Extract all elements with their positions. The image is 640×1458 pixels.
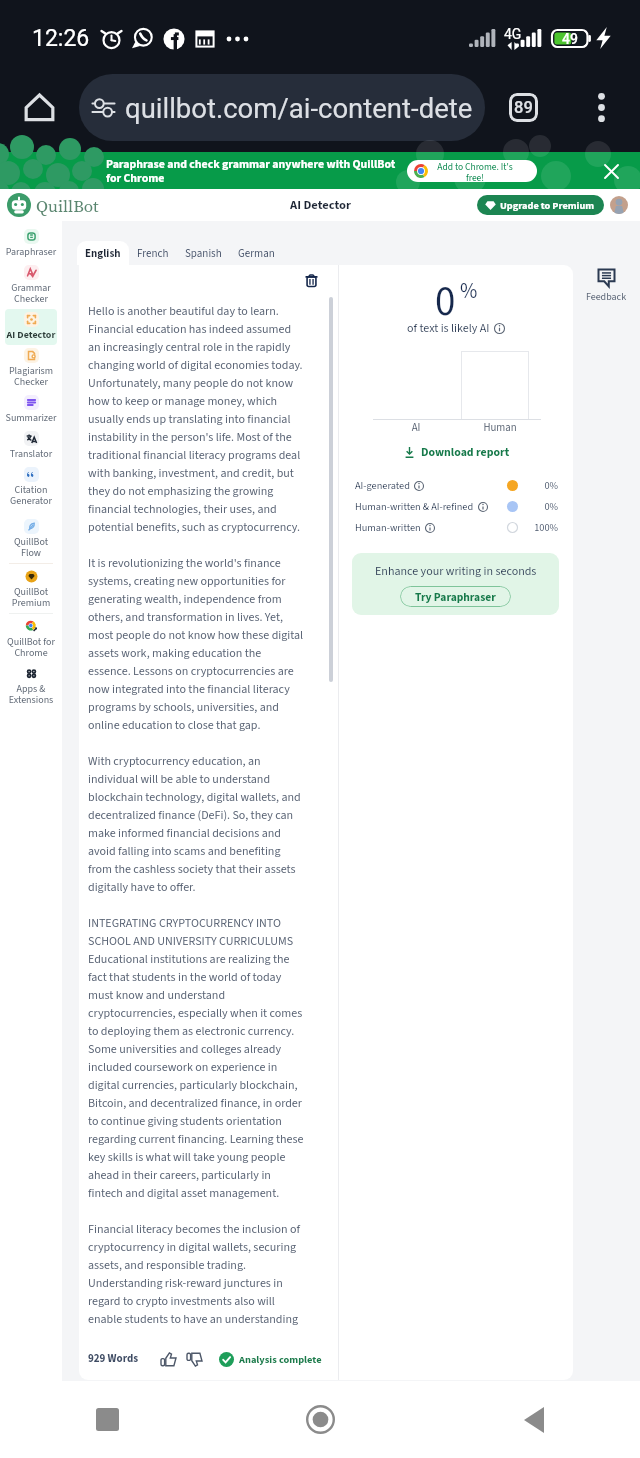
button[interactable]: Delete text <box>301 270 321 290</box>
staticText: Paraphraser <box>5 245 57 259</box>
button[interactable]: French <box>129 241 177 265</box>
staticText: Human-written & AI-refined <box>355 499 474 514</box>
button[interactable]: Account <box>610 196 628 214</box>
button[interactable]: AI Detector <box>5 309 57 345</box>
button[interactable]: Add to Chrome. It's free! <box>407 160 537 182</box>
staticText: Grammar Checker <box>5 281 57 306</box>
staticText: Upgrade to Premium <box>500 198 595 213</box>
staticText: % <box>460 276 478 306</box>
staticText: QuillBot Premium <box>5 585 57 610</box>
staticText: Enhance your writing in seconds <box>375 563 537 580</box>
staticText: AI Detector <box>290 196 351 214</box>
button[interactable]: Try Paraphraser <box>400 586 511 607</box>
staticText: Analysis complete <box>239 1352 322 1367</box>
button[interactable]: Plagiarism Checker <box>5 345 57 392</box>
button[interactable]: More options <box>579 85 623 129</box>
staticText: 929 Words <box>88 1351 139 1367</box>
button[interactable]: Back <box>427 1381 640 1458</box>
staticText: French <box>137 246 169 262</box>
staticText: Try Paraphraser <box>415 589 496 605</box>
staticText: of text is likely AI <box>407 320 490 337</box>
button[interactable]: quillbot.com/ai-content-dete <box>79 74 485 141</box>
staticText: 100% <box>526 520 558 535</box>
staticText: Translator <box>5 447 57 461</box>
button[interactable]: Apps & Extensions <box>5 663 57 710</box>
staticText: 0% <box>526 478 558 493</box>
staticText: 4G <box>504 26 522 42</box>
staticText: Plagiarism Checker <box>5 364 57 389</box>
button[interactable]: QuillBot for Chrome <box>5 616 57 663</box>
button[interactable]: English <box>77 241 129 265</box>
button[interactable]: Summarizer <box>5 392 57 428</box>
staticText: Citation Generator <box>5 483 57 508</box>
staticText: QuillBot <box>36 194 99 217</box>
button[interactable]: QuillBot Premium <box>5 566 57 613</box>
button[interactable]: Grammar Checker <box>5 262 57 309</box>
staticText: Summarizer <box>5 411 57 425</box>
button[interactable]: Home <box>214 1381 427 1458</box>
button[interactable]: Download report <box>399 442 514 463</box>
button[interactable]: Recent apps <box>0 1381 214 1458</box>
staticText: AI <box>373 420 459 435</box>
staticText: Add to Chrome. It's free! <box>431 160 519 182</box>
staticText: Hello is another beautiful day to learn.… <box>88 303 306 1328</box>
staticText: 0% <box>526 499 558 514</box>
staticText: QuillBot for Chrome <box>5 635 57 660</box>
staticText: 12:26 <box>32 25 90 52</box>
staticText: German <box>238 246 275 262</box>
staticText: Feedback <box>579 290 633 304</box>
staticText: 89 <box>514 98 533 117</box>
staticText: AI-generated <box>355 478 410 493</box>
staticText: 49 <box>562 31 578 47</box>
button[interactable]: Like <box>157 1348 179 1370</box>
button[interactable]: Spanish <box>177 241 230 265</box>
button[interactable]: Translator <box>5 428 57 464</box>
button[interactable]: Citation Generator <box>5 464 57 511</box>
button[interactable]: Feedback <box>579 268 633 304</box>
staticText: 0 <box>435 273 456 331</box>
staticText: Spanish <box>185 246 222 262</box>
button[interactable]: German <box>230 241 283 265</box>
button[interactable]: Paraphraser <box>5 226 57 262</box>
staticText: Paraphrase and check grammar anywhere wi… <box>106 156 406 186</box>
button[interactable]: Upgrade to Premium <box>477 195 604 215</box>
staticText: QuillBot Flow <box>5 535 57 560</box>
staticText: Human <box>459 420 541 435</box>
button[interactable]: QuillBot <box>7 193 99 217</box>
staticText: AI Detector <box>5 328 57 342</box>
button[interactable]: Dislike <box>183 1348 205 1370</box>
staticText: English <box>85 246 121 262</box>
staticText: Download report <box>421 444 510 461</box>
button[interactable]: Home <box>15 83 63 131</box>
staticText: Human-written <box>355 520 421 535</box>
staticText: quillbot.com/ai-content-dete <box>125 92 473 124</box>
button[interactable]: QuillBot Flow <box>5 516 57 563</box>
button[interactable]: Tabs <box>501 85 545 129</box>
button[interactable]: Close banner <box>593 153 629 189</box>
staticText: Apps & Extensions <box>5 682 57 707</box>
